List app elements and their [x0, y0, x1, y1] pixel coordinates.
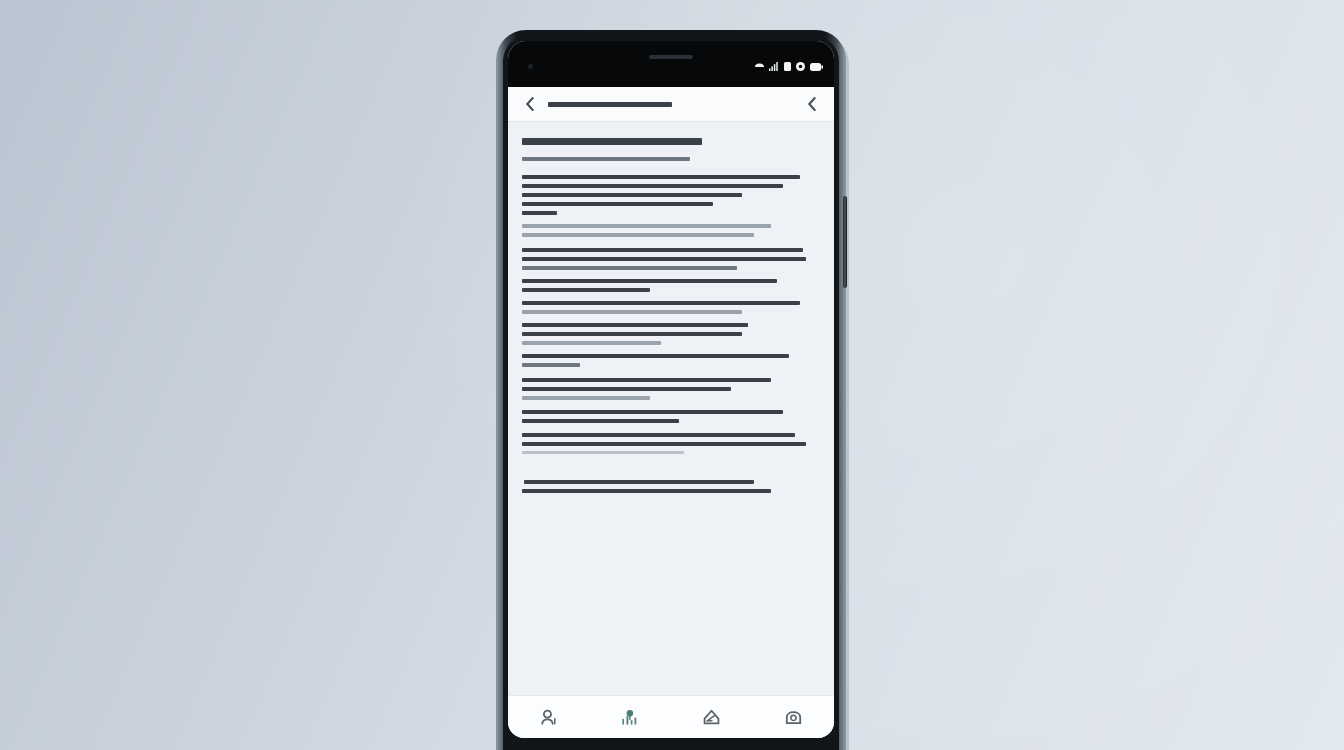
button[interactable]: Camera — [752, 696, 834, 738]
button[interactable] — [548, 102, 795, 107]
button[interactable]: More — [795, 87, 829, 121]
button[interactable]: Back — [513, 87, 547, 121]
button[interactable]: Insights — [589, 696, 670, 738]
button[interactable]: Profile — [508, 696, 589, 738]
button[interactable]: Inbox — [670, 696, 752, 738]
